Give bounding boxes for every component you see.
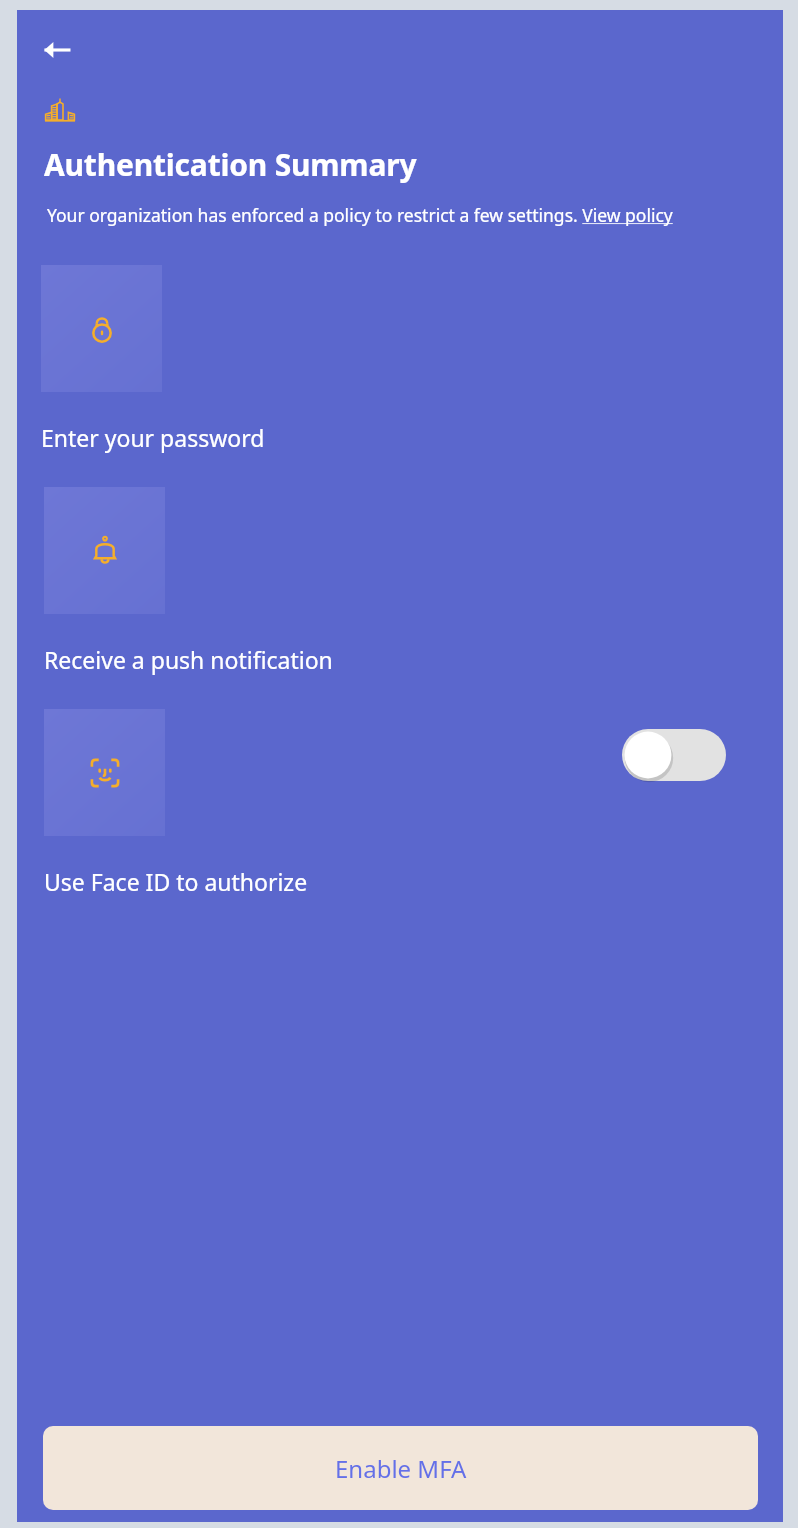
staticText: Authentication Summary: [44, 144, 417, 185]
staticText: Use Face ID to authorize: [44, 866, 308, 897]
button[interactable]: Notification: [44, 487, 165, 614]
button[interactable]: Your organization has enforced a policy …: [47, 203, 678, 227]
button[interactable]: Use Face ID toggle: [622, 729, 726, 781]
button[interactable]: Enable MFA: [43, 1426, 758, 1510]
staticText: Enter your password: [41, 422, 265, 453]
button[interactable]: Password: [41, 265, 162, 392]
button[interactable]: Back: [31, 24, 83, 76]
button[interactable]: Face ID: [44, 709, 165, 836]
staticText: Receive a push notification: [44, 644, 333, 675]
staticText: Enable MFA: [335, 1452, 467, 1485]
